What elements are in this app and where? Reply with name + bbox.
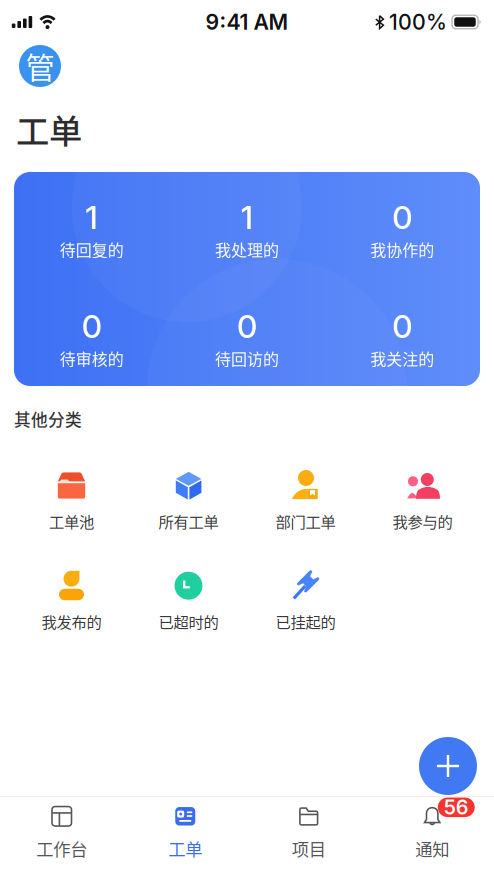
button[interactable]: New work order [419, 737, 477, 795]
button[interactable]: 部门工单 [247, 471, 364, 532]
staticText: 工作台 [36, 836, 87, 861]
button[interactable]: 我发布的 [13, 571, 130, 632]
button[interactable]: 1 [14, 198, 169, 261]
button[interactable]: 所有工单 [130, 471, 247, 532]
staticText: 待回访的 [215, 347, 279, 370]
staticText: 我参与的 [392, 510, 452, 532]
staticText: 1 [85, 198, 98, 237]
staticText: 9:41 AM [205, 9, 288, 35]
button[interactable]: Profile [19, 45, 61, 87]
button[interactable]: 56 [370, 806, 494, 861]
staticText: 已挂起的 [275, 610, 335, 632]
button[interactable]: 工作台 [0, 806, 123, 861]
button[interactable]: 已挂起的 [247, 571, 364, 632]
staticText: 其他分类 [14, 407, 82, 431]
staticText: 0 [392, 198, 412, 237]
button[interactable]: 项目 [247, 806, 370, 861]
staticText: 待回复的 [60, 238, 124, 261]
staticText: 0 [392, 307, 412, 346]
staticText: 56 [444, 795, 469, 819]
staticText: 工单 [168, 836, 202, 861]
staticText: 管 [25, 45, 54, 87]
button[interactable]: 0 [325, 198, 480, 261]
staticText: 项目 [292, 836, 326, 861]
staticText: 1 [240, 198, 253, 237]
staticText: 0 [82, 307, 102, 346]
staticText: 工单 [16, 105, 82, 153]
button[interactable]: 0 [14, 307, 169, 370]
staticText: 0 [237, 307, 257, 346]
button[interactable]: 工单 [123, 806, 247, 861]
staticText: 我处理的 [215, 238, 279, 261]
button[interactable]: 0 [325, 307, 480, 370]
button[interactable]: 工单池 [13, 471, 130, 532]
staticText: 已超时的 [158, 610, 218, 632]
staticText: 待审核的 [60, 347, 124, 370]
staticText: 部门工单 [275, 510, 335, 532]
staticText: 100% [389, 9, 447, 35]
button[interactable]: 已超时的 [130, 571, 247, 632]
staticText: 通知 [415, 836, 449, 861]
staticText: 我协作的 [370, 238, 434, 261]
staticText: 工单池 [49, 510, 94, 532]
staticText: 我发布的 [41, 610, 101, 632]
button[interactable]: 1 [169, 198, 325, 261]
button[interactable]: 我参与的 [364, 471, 481, 532]
staticText: 所有工单 [158, 510, 218, 532]
button[interactable]: 0 [169, 307, 325, 370]
staticText: 我关注的 [370, 347, 434, 370]
